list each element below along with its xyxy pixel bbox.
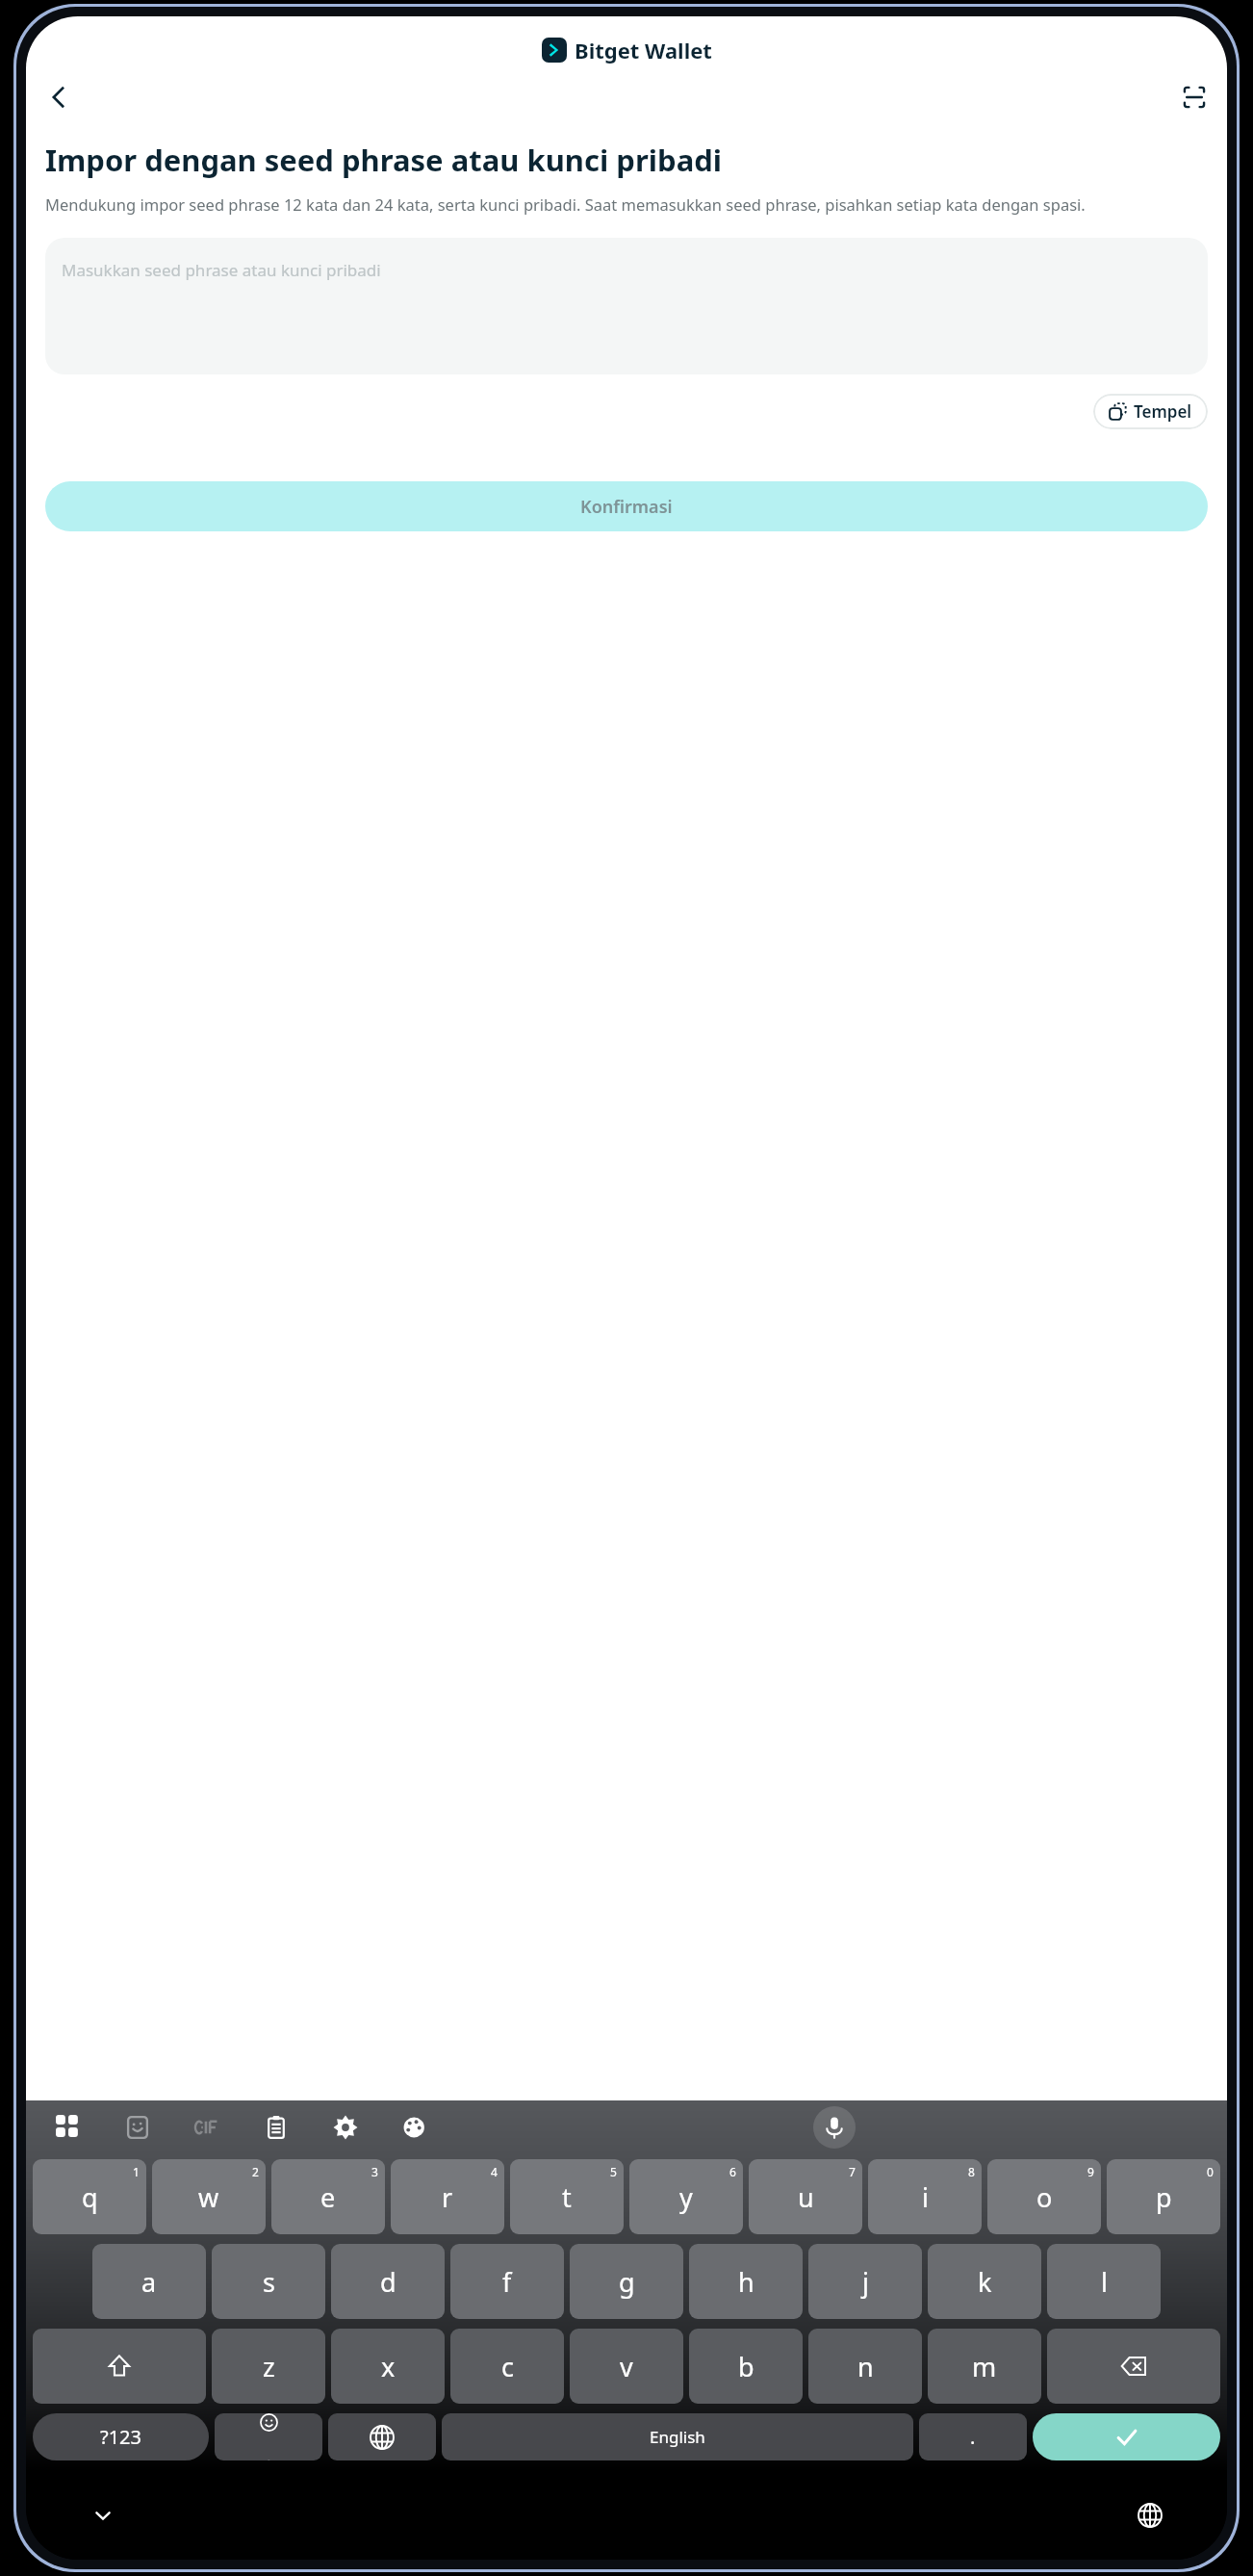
staticText: t: [562, 2179, 572, 2215]
button[interactable]: Enter: [1033, 2413, 1220, 2460]
button[interactable]: Masukkan seed phrase atau kunci pribadi: [45, 238, 1208, 374]
button[interactable]: .: [919, 2413, 1027, 2460]
button[interactable]: e: [271, 2159, 385, 2234]
staticText: Mendukung impor seed phrase 12 kata dan …: [45, 193, 1086, 215]
button[interactable]: v: [570, 2329, 683, 2404]
button[interactable]: x: [331, 2329, 445, 2404]
staticText: p: [1156, 2179, 1172, 2215]
staticText: q: [82, 2179, 98, 2215]
staticText: k: [978, 2264, 992, 2300]
staticText: o: [1036, 2179, 1053, 2215]
button[interactable]: Clipboard: [242, 2100, 311, 2154]
staticText: 5: [610, 2164, 617, 2179]
button[interactable]: j: [808, 2244, 922, 2319]
button[interactable]: l: [1047, 2244, 1161, 2319]
button[interactable]: d: [331, 2244, 445, 2319]
staticText: x: [381, 2349, 396, 2384]
button[interactable]: Backspace: [1047, 2329, 1220, 2404]
staticText: f: [502, 2264, 512, 2300]
button[interactable]: Settings: [311, 2100, 380, 2154]
button[interactable]: s: [212, 2244, 325, 2319]
button[interactable]: i: [868, 2159, 982, 2234]
staticText: 7: [849, 2164, 856, 2179]
staticText: s: [263, 2264, 275, 2300]
button[interactable]: m: [928, 2329, 1041, 2404]
button[interactable]: Scan: [1171, 74, 1217, 120]
button[interactable]: ?123: [33, 2413, 209, 2460]
button[interactable]: u: [749, 2159, 862, 2234]
staticText: 8: [968, 2164, 975, 2179]
staticText: 9: [1087, 2164, 1094, 2179]
button[interactable]: w: [152, 2159, 266, 2234]
staticText: n: [857, 2349, 874, 2384]
button[interactable]: h: [689, 2244, 803, 2319]
button[interactable]: Stickers: [103, 2100, 172, 2154]
staticText: 0: [1207, 2164, 1214, 2179]
staticText: English: [650, 2426, 705, 2448]
staticText: b: [738, 2349, 754, 2384]
staticText: 1: [133, 2164, 140, 2179]
staticText: y: [679, 2179, 693, 2215]
staticText: Konfirmasi: [580, 495, 673, 519]
button[interactable]: English: [442, 2413, 913, 2460]
staticText: h: [738, 2264, 754, 2300]
staticText: 3: [371, 2164, 378, 2179]
staticText: d: [380, 2264, 396, 2300]
button[interactable]: b: [689, 2329, 803, 2404]
button[interactable]: Keyboard layouts: [34, 2100, 103, 2154]
staticText: Tempel: [1134, 400, 1192, 423]
staticText: Bitget Wallet: [575, 36, 712, 64]
button[interactable]: q: [33, 2159, 146, 2234]
staticText: Impor dengan seed phrase atau kunci prib…: [45, 140, 723, 180]
button[interactable]: r: [391, 2159, 504, 2234]
staticText: w: [198, 2179, 219, 2215]
button[interactable]: Back: [36, 74, 82, 120]
staticText: a: [141, 2264, 157, 2300]
staticText: 2: [252, 2164, 259, 2179]
staticText: v: [620, 2349, 633, 2384]
staticText: ?123: [100, 2424, 141, 2450]
button[interactable]: n: [808, 2329, 922, 2404]
button[interactable]: g: [570, 2244, 683, 2319]
button[interactable]: Emoji: [215, 2413, 322, 2460]
button[interactable]: p: [1107, 2159, 1220, 2234]
button[interactable]: Hide keyboard: [26, 2471, 180, 2560]
staticText: e: [320, 2179, 336, 2215]
staticText: m: [972, 2349, 997, 2384]
button[interactable]: GIF: [172, 2100, 242, 2154]
staticText: g: [619, 2264, 635, 2300]
staticText: r: [442, 2179, 453, 2215]
button[interactable]: o: [987, 2159, 1101, 2234]
button[interactable]: Voice input: [449, 2100, 1219, 2154]
staticText: z: [263, 2349, 275, 2384]
button[interactable]: c: [450, 2329, 564, 2404]
button[interactable]: k: [928, 2244, 1041, 2319]
button[interactable]: Change language: [328, 2413, 436, 2460]
staticText: u: [798, 2179, 814, 2215]
button[interactable]: t: [510, 2159, 624, 2234]
button[interactable]: Shift: [33, 2329, 206, 2404]
staticText: 4: [491, 2164, 498, 2179]
staticText: c: [501, 2349, 514, 2384]
staticText: .: [970, 2424, 976, 2450]
button[interactable]: z: [212, 2329, 325, 2404]
button[interactable]: Change keyboard: [1073, 2471, 1227, 2560]
button[interactable]: a: [92, 2244, 206, 2319]
button[interactable]: Konfirmasi: [45, 481, 1208, 531]
staticText: Masukkan seed phrase atau kunci pribadi: [62, 259, 381, 281]
button[interactable]: Tempel: [1093, 394, 1208, 429]
staticText: l: [1101, 2264, 1108, 2300]
staticText: 6: [729, 2164, 736, 2179]
button[interactable]: f: [450, 2244, 564, 2319]
button[interactable]: y: [629, 2159, 743, 2234]
staticText: j: [862, 2264, 869, 2300]
button[interactable]: Themes: [380, 2100, 449, 2154]
staticText: i: [922, 2179, 929, 2215]
